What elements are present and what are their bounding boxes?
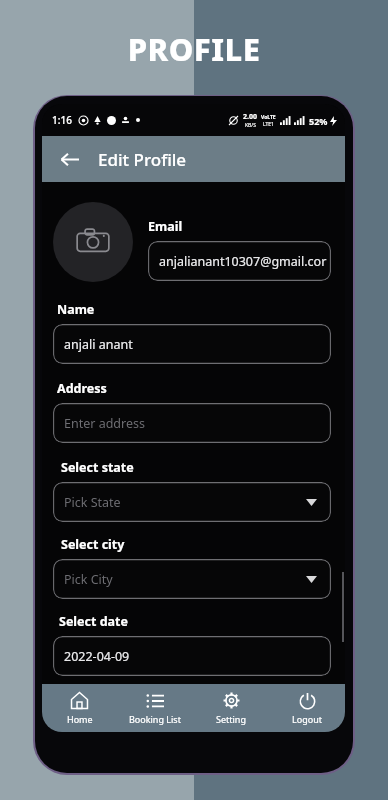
- staticText: Select date: [59, 613, 128, 630]
- staticText: Booking List: [129, 713, 181, 725]
- staticText: PROFILE: [0, 28, 388, 70]
- button[interactable]: Setting: [193, 684, 269, 732]
- staticText: Select city: [61, 536, 125, 553]
- staticText: Address: [57, 380, 107, 397]
- staticText: 2.00: [243, 112, 257, 122]
- button[interactable]: Home: [42, 684, 117, 732]
- staticText: KB/S: [245, 122, 256, 129]
- button[interactable]: 2022-04-09: [53, 636, 331, 676]
- staticText: 1:16: [52, 113, 72, 127]
- staticText: Home: [67, 713, 93, 725]
- staticText: 52%: [309, 115, 328, 127]
- staticText: anjali anant: [64, 336, 133, 353]
- staticText: Select state: [61, 459, 134, 476]
- staticText: Setting: [216, 713, 246, 725]
- staticText: Logout: [292, 713, 322, 725]
- staticText: LTE1: [263, 121, 274, 128]
- button[interactable]: anjalianant10307@gmail.cor: [148, 241, 331, 281]
- staticText: Name: [57, 301, 95, 318]
- staticText: Enter address: [64, 415, 145, 432]
- staticText: Pick State: [64, 494, 121, 511]
- button[interactable]: Back: [52, 142, 86, 176]
- staticText: Email: [148, 218, 183, 235]
- button[interactable]: Change photo: [53, 202, 133, 282]
- button[interactable]: Enter address: [53, 403, 331, 443]
- button[interactable]: Logout: [269, 684, 345, 732]
- button[interactable]: Pick State: [53, 482, 331, 522]
- button[interactable]: Pick City: [53, 559, 331, 599]
- button[interactable]: Booking List: [117, 684, 193, 732]
- staticText: Edit Profile: [98, 148, 187, 171]
- staticText: Pick City: [64, 571, 113, 588]
- staticText: 2022-04-09: [64, 648, 130, 665]
- staticText: VoLTE: [261, 114, 276, 121]
- staticText: anjalianant10307@gmail.cor: [159, 253, 327, 270]
- button[interactable]: anjali anant: [53, 324, 331, 364]
